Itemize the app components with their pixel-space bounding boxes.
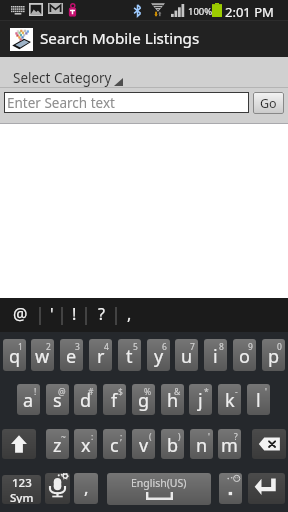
staticText: q xyxy=(9,344,21,369)
staticText: m xyxy=(221,433,238,458)
staticText: 1 xyxy=(18,341,23,353)
button[interactable]: w xyxy=(31,339,54,371)
button[interactable]: Voice input xyxy=(45,473,70,504)
staticText: 9 xyxy=(248,341,253,353)
button[interactable]: Comma xyxy=(74,473,98,504)
staticText: & xyxy=(174,386,181,398)
staticText: v xyxy=(139,433,149,458)
button[interactable]: y xyxy=(147,339,170,371)
button[interactable]: , xyxy=(116,298,142,332)
staticText: r xyxy=(97,344,105,369)
staticText: Enter Search text xyxy=(7,94,115,112)
button[interactable]: m xyxy=(218,429,241,459)
staticText: Select Category xyxy=(13,69,112,87)
staticText: 2 xyxy=(46,341,51,353)
staticText: l xyxy=(256,388,261,413)
staticText: i xyxy=(213,344,218,369)
staticText: t xyxy=(126,344,133,369)
staticText: ? xyxy=(234,431,238,443)
button[interactable]: ' xyxy=(41,298,62,332)
button[interactable]: Select Category xyxy=(0,57,288,88)
staticText: u xyxy=(181,344,193,369)
staticText: c xyxy=(110,433,119,458)
staticText: # xyxy=(88,386,94,398)
button[interactable]: Enter xyxy=(248,473,285,504)
staticText: n xyxy=(196,433,208,458)
staticText: e xyxy=(66,344,77,369)
staticText: p xyxy=(268,344,280,369)
button[interactable]: i xyxy=(204,339,227,371)
staticText: @ xyxy=(13,303,28,325)
button[interactable]: b xyxy=(161,429,184,459)
staticText: % xyxy=(144,386,152,398)
button[interactable]: Enter Search text xyxy=(4,92,249,113)
button[interactable]: k xyxy=(218,384,241,415)
button[interactable]: c xyxy=(103,429,126,459)
button[interactable]: g xyxy=(132,384,155,415)
staticText: ? xyxy=(98,303,105,325)
button[interactable]: @ xyxy=(0,298,41,332)
staticText: 2:01 PM xyxy=(225,3,274,21)
staticText: k xyxy=(225,388,235,413)
staticText: - xyxy=(235,386,238,398)
button[interactable]: ? xyxy=(86,298,116,332)
button[interactable]: f xyxy=(103,384,126,415)
staticText: 8 xyxy=(219,341,224,353)
button[interactable]: a xyxy=(17,384,40,415)
button[interactable]: o xyxy=(233,339,256,371)
staticText: Go xyxy=(260,95,277,112)
staticText: ~ xyxy=(61,431,66,443)
staticText: , xyxy=(127,303,132,325)
staticText: ! xyxy=(72,303,77,325)
button[interactable]: r xyxy=(89,339,112,371)
button[interactable]: x xyxy=(74,429,97,459)
staticText: ) xyxy=(178,431,181,443)
button[interactable]: s xyxy=(46,384,69,415)
staticText: ' xyxy=(50,303,54,325)
button[interactable]: Shift xyxy=(2,429,36,459)
button[interactable]: t xyxy=(118,339,141,371)
staticText: 7 xyxy=(190,341,195,353)
staticText: d xyxy=(80,388,92,413)
button[interactable]: z xyxy=(46,429,69,459)
staticText: @ xyxy=(58,386,66,398)
staticText: 4 xyxy=(104,341,109,353)
staticText: ' xyxy=(208,431,210,443)
button[interactable]: l xyxy=(247,384,270,415)
button[interactable]: Backspace xyxy=(252,429,286,459)
staticText: g xyxy=(138,388,150,413)
button[interactable]: u xyxy=(175,339,198,371)
button[interactable]: Period xyxy=(219,473,242,504)
staticText: , xyxy=(84,476,89,499)
button[interactable]: Space xyxy=(107,473,211,505)
staticText: 0 xyxy=(277,341,282,353)
button[interactable]: ! xyxy=(62,298,86,332)
staticText: b xyxy=(167,433,179,458)
button[interactable]: d xyxy=(74,384,97,415)
staticText: x xyxy=(81,433,91,458)
staticText: * xyxy=(204,386,209,398)
staticText: f xyxy=(111,388,118,413)
button[interactable]: p xyxy=(262,339,285,371)
button[interactable]: h xyxy=(161,384,184,415)
staticText: ' xyxy=(265,386,267,398)
button[interactable]: Symbols xyxy=(2,475,41,504)
button[interactable]: q xyxy=(3,339,26,371)
staticText: ( xyxy=(149,431,152,443)
staticText: s xyxy=(53,388,62,413)
button[interactable]: j xyxy=(189,384,212,415)
staticText: 100% xyxy=(188,5,213,18)
button[interactable]: v xyxy=(132,429,155,459)
staticText: ! xyxy=(34,386,37,398)
staticText: : xyxy=(91,431,94,443)
staticText: 5 xyxy=(133,341,138,353)
staticText: Search Mobile Listings xyxy=(40,28,200,49)
button[interactable]: Go xyxy=(253,92,284,114)
button[interactable]: n xyxy=(190,429,213,459)
staticText: z xyxy=(53,433,62,458)
staticText: o xyxy=(239,344,250,369)
button[interactable]: e xyxy=(60,339,83,371)
staticText: h xyxy=(167,388,179,413)
staticText: a xyxy=(23,388,34,413)
staticText: y xyxy=(154,344,164,369)
